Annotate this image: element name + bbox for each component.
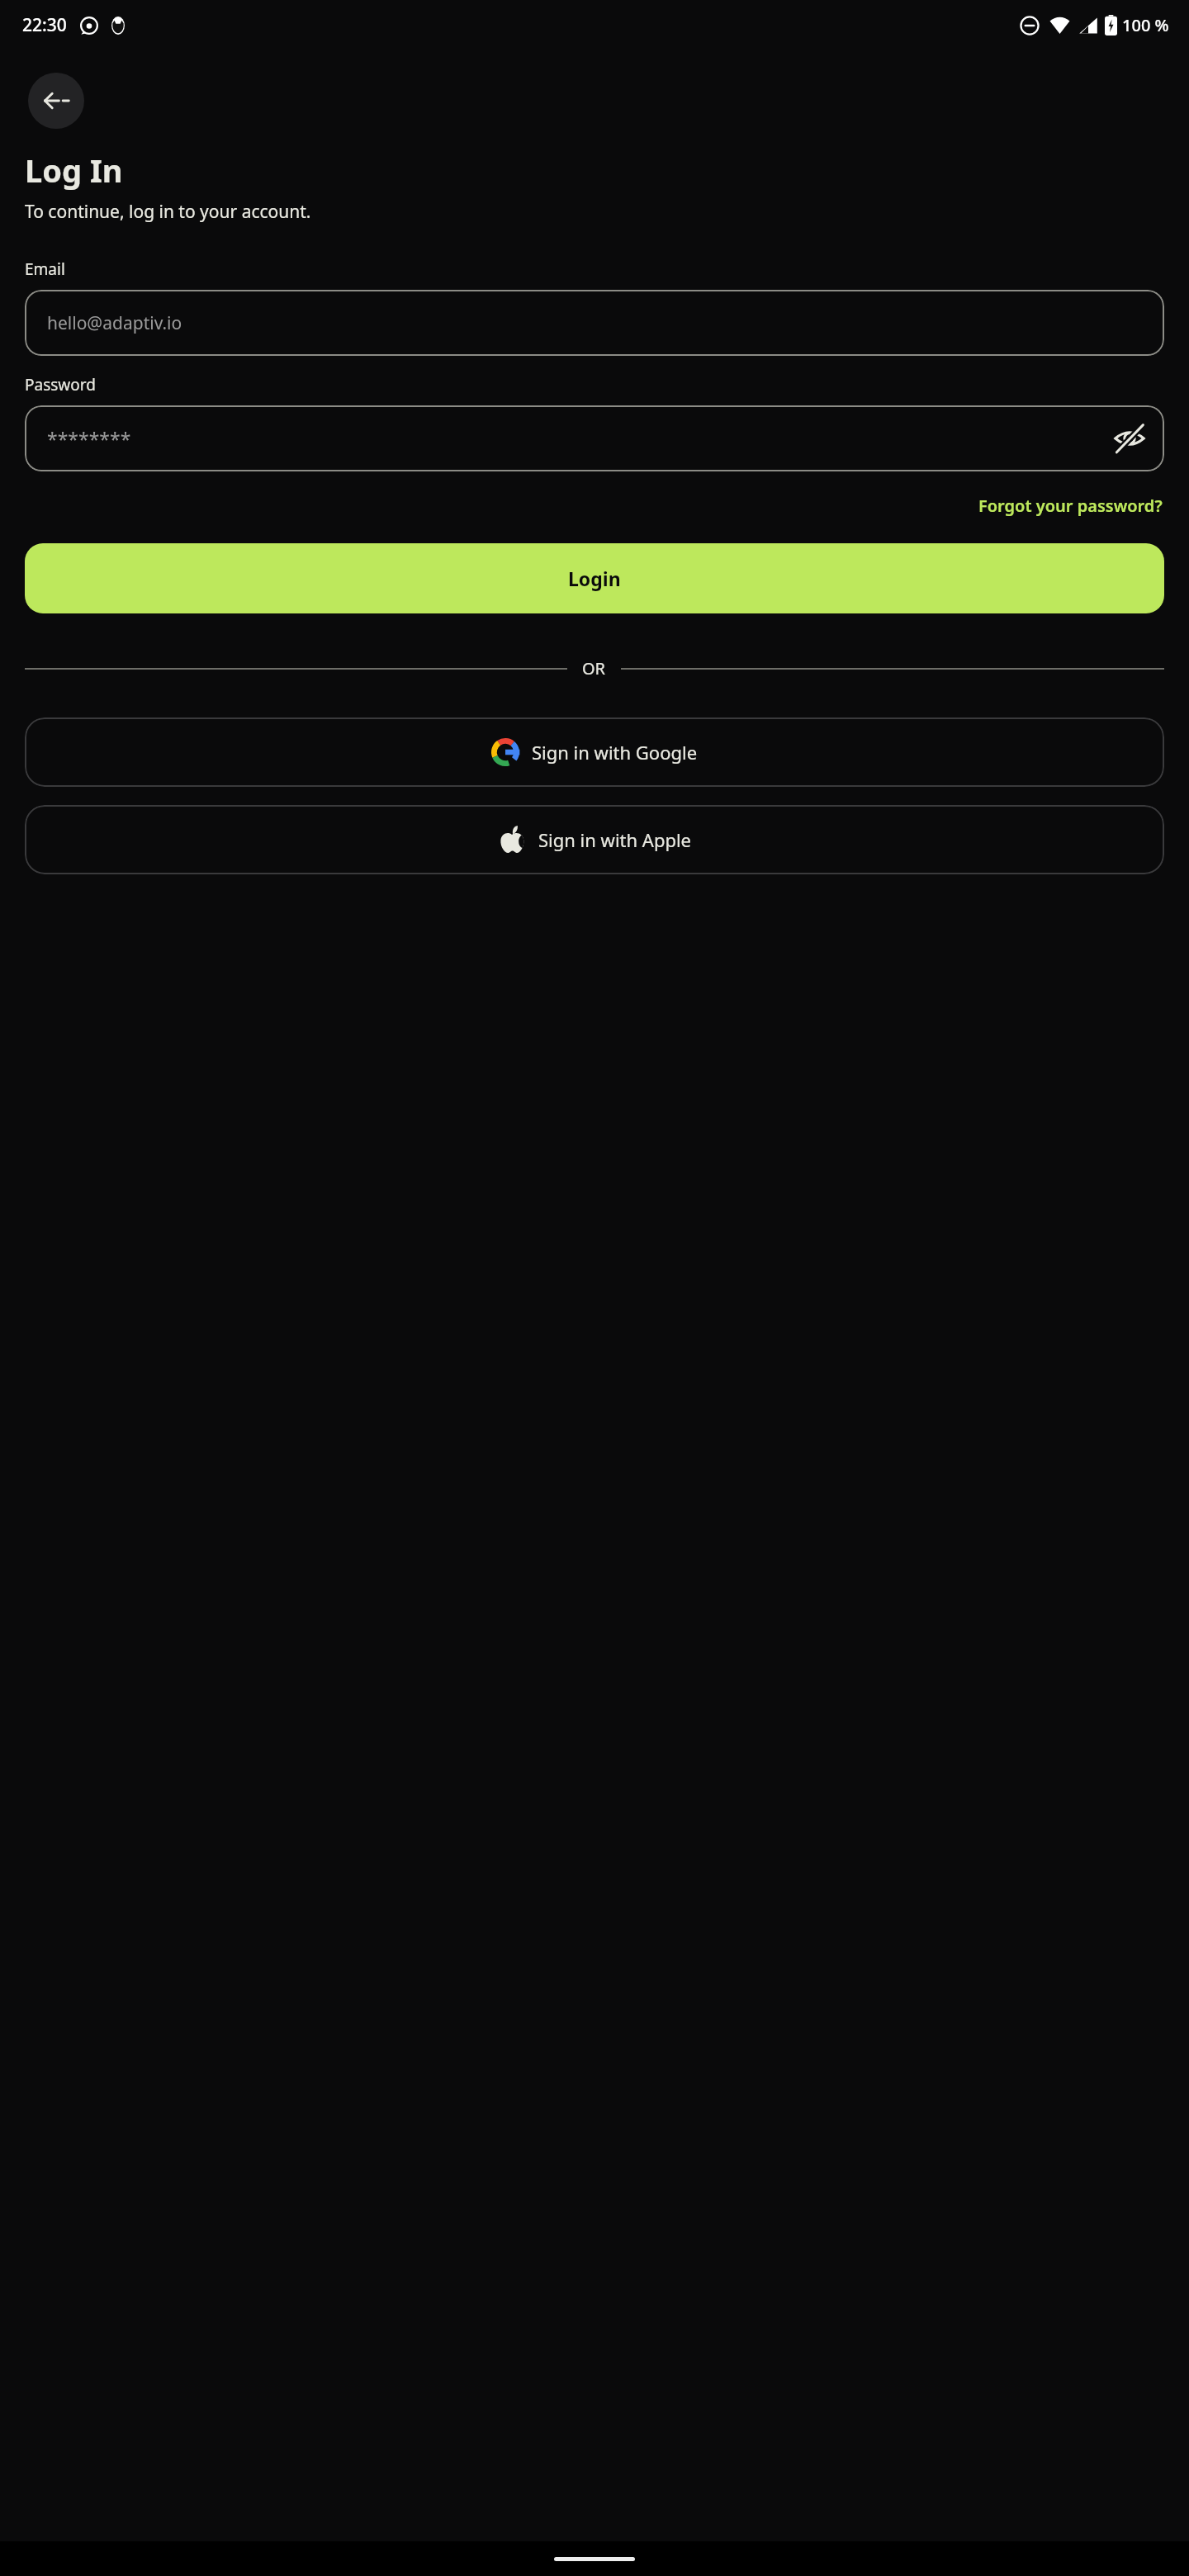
- button[interactable]: hello@adaptiv.io: [25, 290, 1164, 356]
- staticText: Email: [25, 258, 65, 280]
- staticText: To continue, log in to your account.: [25, 200, 311, 224]
- staticText: Sign in with Apple: [538, 827, 692, 852]
- staticText: 22:30: [22, 13, 67, 37]
- staticText: OR: [582, 657, 606, 680]
- staticText: Forgot your password?: [978, 495, 1163, 517]
- staticText: Sign in with Google: [532, 740, 698, 765]
- button[interactable]: Show password: [1106, 415, 1153, 462]
- button[interactable]: Sign in with Google: [25, 717, 1164, 787]
- button[interactable]: Back: [28, 73, 84, 129]
- staticText: Password: [25, 374, 96, 395]
- staticText: Login: [568, 566, 621, 591]
- staticText: ********: [47, 426, 131, 452]
- button[interactable]: ********: [25, 405, 1164, 471]
- button[interactable]: Forgot your password?: [977, 491, 1164, 520]
- button[interactable]: Login: [25, 543, 1164, 613]
- staticText: Log In: [25, 149, 123, 192]
- staticText: hello@adaptiv.io: [47, 311, 182, 335]
- button[interactable]: Sign in with Apple: [25, 805, 1164, 874]
- staticText: 100 %: [1122, 14, 1169, 36]
